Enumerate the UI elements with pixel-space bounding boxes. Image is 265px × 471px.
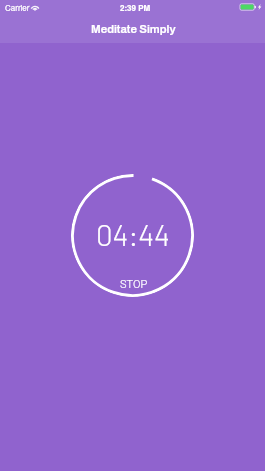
staticText: Meditate Simply bbox=[91, 23, 176, 36]
button[interactable]: Stop timer bbox=[71, 174, 194, 297]
staticText: STOP bbox=[120, 278, 148, 291]
staticText: 2:39 PM bbox=[120, 2, 151, 13]
staticText: Carrier bbox=[5, 2, 30, 13]
staticText: 04:44 bbox=[96, 216, 170, 251]
